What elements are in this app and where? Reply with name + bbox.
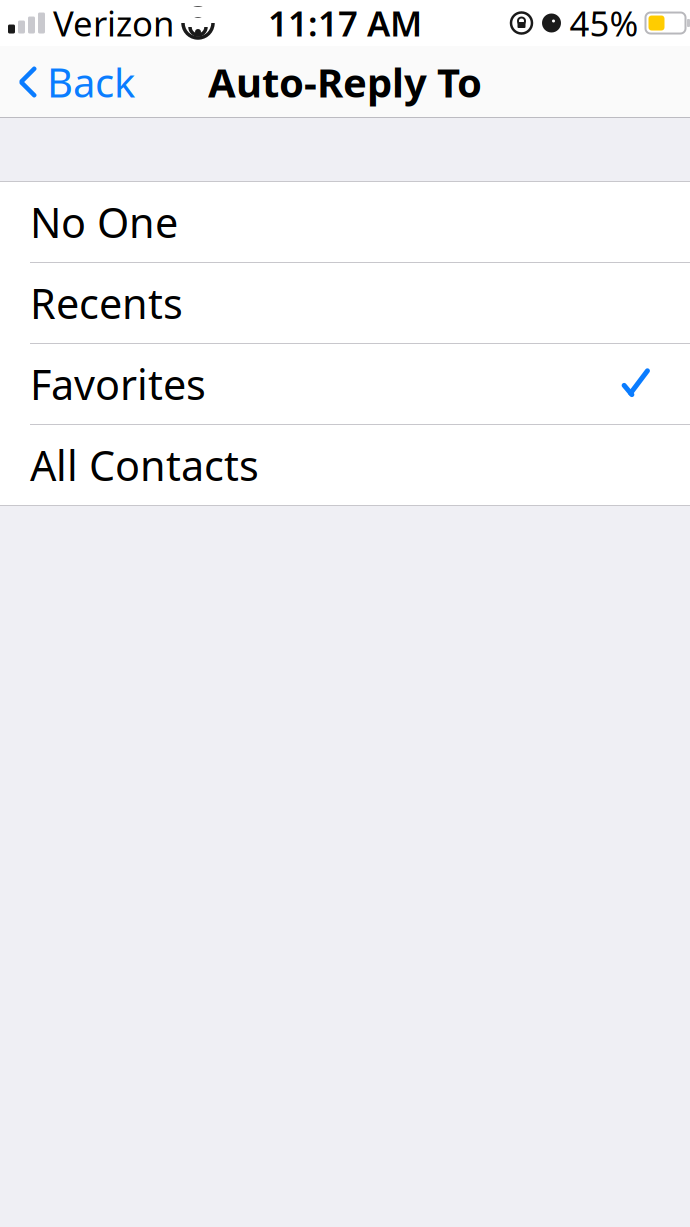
- staticText: Verizon: [53, 0, 174, 46]
- button[interactable]: Back: [0, 47, 149, 116]
- button[interactable]: All Contacts: [0, 425, 690, 506]
- staticText: 45%: [569, 0, 638, 46]
- staticText: All Contacts: [30, 438, 259, 492]
- button[interactable]: Favorites: [0, 344, 690, 425]
- staticText: No One: [30, 195, 178, 249]
- staticText: 11:17 AM: [268, 0, 422, 46]
- staticText: Recents: [30, 276, 183, 330]
- button[interactable]: No One: [0, 182, 690, 263]
- staticText: Favorites: [30, 357, 206, 411]
- staticText: Auto-Reply To: [208, 55, 482, 108]
- staticText: Back: [47, 55, 135, 108]
- button[interactable]: Recents: [0, 263, 690, 344]
